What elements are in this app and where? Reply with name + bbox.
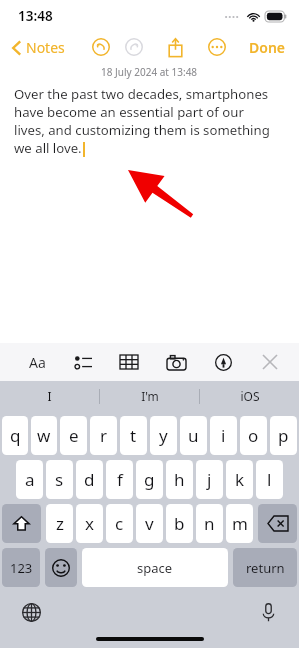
button[interactable]: Share — [162, 34, 188, 60]
staticText: l — [267, 468, 272, 491]
button[interactable]: I — [0, 381, 99, 411]
button[interactable]: n — [196, 504, 223, 543]
button[interactable]: Emoji — [45, 548, 77, 587]
button[interactable]: g — [136, 460, 163, 499]
button[interactable]: r — [90, 416, 117, 455]
button[interactable]: Undo — [89, 35, 113, 59]
button[interactable]: h — [166, 460, 193, 499]
staticText: have become an essential part of our — [14, 103, 244, 121]
button[interactable]: c — [106, 504, 133, 543]
button[interactable]: 123 — [2, 548, 40, 587]
button[interactable]: m — [226, 504, 253, 543]
staticText: Over the past two decades, smartphones — [14, 85, 269, 103]
staticText: i — [221, 424, 226, 447]
staticText: j — [207, 468, 212, 491]
button[interactable]: z — [46, 504, 73, 543]
button[interactable]: Change keyboard — [16, 597, 46, 627]
staticText: 13:48 — [18, 7, 53, 25]
staticText: p — [278, 424, 289, 447]
staticText: Notes — [26, 38, 65, 57]
button[interactable]: o — [240, 416, 267, 455]
button[interactable]: e — [60, 416, 87, 455]
button[interactable]: f — [106, 460, 133, 499]
staticText: q — [10, 424, 21, 447]
button[interactable]: Dictate — [253, 597, 283, 627]
staticText: c — [115, 512, 124, 535]
staticText: we all love. — [14, 139, 82, 157]
button[interactable]: Backspace — [258, 504, 297, 543]
button[interactable]: I'm — [100, 381, 199, 411]
staticText: t — [130, 424, 137, 447]
button[interactable]: Text format — [22, 347, 52, 377]
button[interactable]: w — [31, 416, 57, 455]
button[interactable]: More — [205, 35, 229, 59]
staticText: return — [246, 559, 285, 577]
button[interactable]: a — [16, 460, 43, 499]
staticText: space — [137, 559, 173, 577]
button[interactable]: p — [270, 416, 297, 455]
button[interactable]: x — [76, 504, 103, 543]
staticText: iOS — [240, 388, 260, 404]
staticText: s — [55, 468, 64, 491]
staticText: r — [100, 424, 108, 447]
staticText: a — [25, 468, 35, 491]
button[interactable]: i — [210, 416, 237, 455]
staticText: o — [248, 424, 259, 447]
button[interactable]: Close keyboard — [255, 347, 285, 377]
staticText: m — [232, 512, 248, 535]
button[interactable]: iOS — [200, 381, 299, 411]
button[interactable]: d — [76, 460, 103, 499]
staticText: y — [159, 424, 168, 447]
button[interactable]: Table — [114, 347, 144, 377]
button[interactable]: Shift — [2, 504, 41, 543]
staticText: I — [47, 388, 52, 404]
staticText: n — [204, 512, 215, 535]
button[interactable]: Markup — [208, 347, 238, 377]
staticText: z — [56, 512, 64, 535]
button[interactable]: space — [82, 548, 228, 587]
button[interactable]: Checklist — [68, 347, 98, 377]
staticText: 18 July 2024 at 13:48 — [101, 65, 198, 79]
button[interactable]: t — [120, 416, 147, 455]
staticText: u — [188, 424, 199, 447]
button[interactable]: Notes — [10, 36, 67, 59]
staticText: b — [174, 512, 185, 535]
button[interactable]: y — [150, 416, 177, 455]
staticText: w — [37, 424, 51, 447]
button[interactable]: Done — [246, 35, 289, 60]
button[interactable]: Camera — [161, 347, 191, 377]
button[interactable]: u — [180, 416, 207, 455]
button[interactable]: j — [196, 460, 223, 499]
staticText: Done — [249, 38, 286, 57]
staticText: v — [145, 512, 154, 535]
button[interactable]: b — [166, 504, 193, 543]
staticText: lives, and customizing them is something — [14, 121, 270, 139]
staticText: h — [174, 468, 185, 491]
staticText: 123 — [10, 559, 33, 577]
staticText: g — [144, 468, 155, 491]
staticText: x — [85, 512, 94, 535]
staticText: Aa — [29, 353, 46, 372]
button[interactable]: s — [46, 460, 73, 499]
button[interactable]: k — [226, 460, 253, 499]
button[interactable]: Redo — [122, 35, 146, 59]
staticText: e — [69, 424, 79, 447]
button[interactable]: q — [2, 416, 28, 455]
staticText: k — [235, 468, 245, 491]
staticText: d — [84, 468, 95, 491]
button[interactable]: v — [136, 504, 163, 543]
staticText: f — [117, 468, 123, 491]
staticText: I'm — [141, 388, 159, 404]
button[interactable]: return — [233, 548, 297, 587]
button[interactable]: l — [256, 460, 283, 499]
